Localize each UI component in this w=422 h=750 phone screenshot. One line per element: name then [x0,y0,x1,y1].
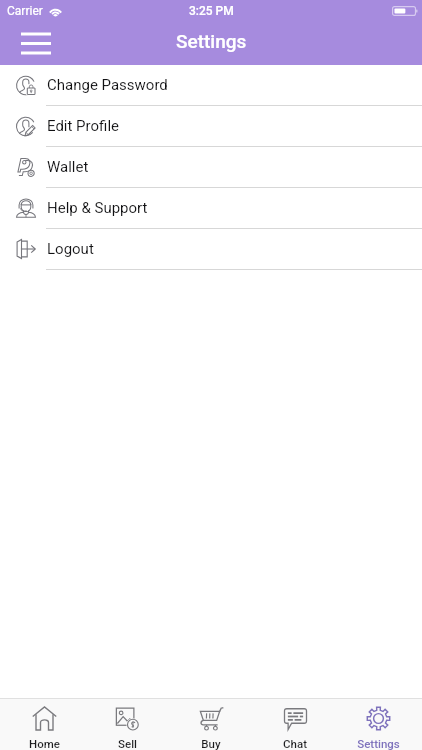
button[interactable]: Logout [0,229,422,270]
button[interactable]: Sell [87,699,167,750]
staticText: Wallet [47,158,89,176]
button[interactable]: Edit Profile [0,106,422,147]
staticText: Logout [47,240,94,258]
staticText: Help & Support [47,199,148,217]
button[interactable]: Chat [255,699,335,750]
staticText: Buy [201,737,221,750]
button[interactable]: Wallet [0,147,422,188]
button[interactable]: Help & Support [0,188,422,229]
button[interactable]: Home [4,699,84,750]
staticText: Settings [357,737,400,750]
staticText: Chat [283,737,307,750]
button[interactable]: Open navigation menu [14,22,58,65]
staticText: Settings [176,30,247,52]
staticText: Sell [118,737,137,750]
button[interactable]: Buy [171,699,251,750]
staticText: Home [29,737,60,750]
staticText: 3:25 PM [189,4,234,18]
staticText: Carrier [7,4,43,18]
staticText: Edit Profile [47,117,119,135]
button[interactable]: Change Password [0,65,422,106]
button[interactable]: Settings [338,699,418,750]
staticText: Change Password [47,76,168,94]
